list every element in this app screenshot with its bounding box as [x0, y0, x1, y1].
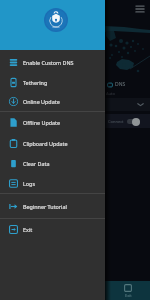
button[interactable]: Open navigation menu [134, 3, 146, 15]
button[interactable]: Enable Custom DNS [0, 52, 105, 72]
button[interactable]: Online Update [0, 92, 105, 111]
button[interactable]: Expand [104, 98, 150, 111]
staticText: Connect [108, 119, 124, 124]
button[interactable]: Clipboard Update [0, 133, 105, 153]
staticText: DNS [115, 81, 126, 88]
button[interactable]: Tethering [0, 72, 105, 92]
button[interactable]: Exit [105, 281, 150, 300]
button[interactable]: Beginner Tutorial [0, 194, 105, 218]
staticText: Logs [23, 180, 35, 187]
staticText: Auto [106, 91, 115, 96]
staticText: Online Update [23, 98, 60, 105]
staticText: Clear Data [23, 160, 50, 167]
button[interactable]: Exit [0, 219, 105, 240]
other: Expand [137, 101, 144, 108]
staticText: Exit [23, 226, 33, 233]
button[interactable]: Connect [104, 114, 150, 128]
staticText: Offline Update [23, 119, 61, 126]
staticText: Exit [125, 293, 132, 298]
staticText: Clipboard Update [23, 140, 68, 147]
staticText: Beginner Tutorial [23, 203, 67, 210]
button[interactable]: Clear Data [0, 153, 105, 174]
staticText: Tethering [23, 79, 48, 86]
button[interactable]: Offline Update [0, 112, 105, 133]
staticText: Enable Custom DNS [23, 59, 74, 66]
button[interactable]: Logs [0, 174, 105, 193]
